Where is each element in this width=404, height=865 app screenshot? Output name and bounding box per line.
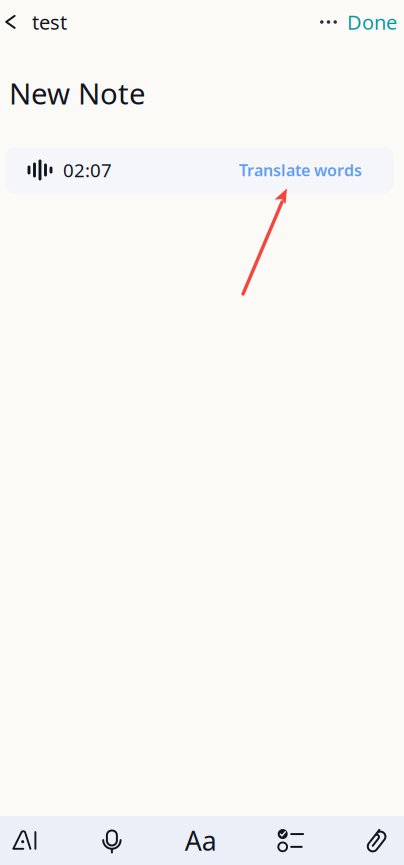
button[interactable]: test [0,0,77,44]
button[interactable]: Text formatting [183,827,217,853]
button[interactable]: AI assistant [12,829,37,851]
staticText: Translate words [239,159,362,181]
button[interactable]: Done [338,0,404,44]
staticText: test [32,9,67,35]
staticText: Aa [185,823,217,858]
button[interactable]: Record audio [98,827,122,853]
button[interactable]: Translate words [233,150,368,190]
staticText: Done [347,9,397,35]
staticText: 02:07 [63,158,112,182]
button[interactable]: Checklist [278,829,304,852]
staticText: New Note [9,73,146,112]
button[interactable]: More options [319,0,338,44]
button[interactable]: Attach file [365,828,388,852]
